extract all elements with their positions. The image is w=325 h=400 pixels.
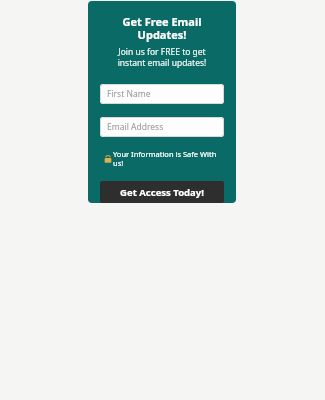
button[interactable]: Get Access Today!: [100, 181, 224, 203]
staticText: Join us for FREE to get instant email up…: [106, 46, 218, 68]
staticText: Get Access Today!: [120, 186, 204, 199]
button[interactable]: First Name: [100, 84, 224, 104]
staticText: Get Free Email Updates!: [100, 14, 224, 42]
staticText: Email Address: [107, 121, 164, 133]
other: Secure: [104, 155, 112, 163]
staticText: Your Information is Safe With us!: [113, 149, 224, 168]
staticText: First Name: [107, 88, 151, 100]
button[interactable]: Email Address: [100, 117, 224, 137]
